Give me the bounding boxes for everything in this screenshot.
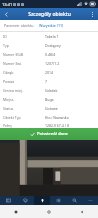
staticText: 7 [45,79,95,84]
button[interactable]: Map [0,196,17,205]
button[interactable]: Gmina miej. [0,86,98,95]
button[interactable]: Potwierdź dane [0,128,98,140]
staticText: Status [3,106,45,111]
button[interactable]: Search [66,196,82,205]
button[interactable]: Numer Ewi. [0,59,98,68]
button[interactable]: Home [32,205,65,218]
staticText: Pełny [3,123,45,128]
button[interactable]: Obręb [0,68,98,77]
staticText: Numer EGiB [3,52,45,57]
staticText: Powiat [3,79,45,84]
button[interactable]: Parametr obiektu [0,20,98,31]
button[interactable]: Typ [0,41,98,50]
staticText: 13:41 [2,2,13,7]
button[interactable]: Obiekt Typ [0,113,98,122]
staticText: Kto i Nazwisko [45,115,95,120]
button[interactable]: ID [0,32,98,41]
staticText: Dostępny [45,43,95,48]
staticText: 0.48/4 [45,52,95,57]
staticText: Parametr obiektu [4,23,34,28]
staticText: 1282.0 67.4 / 8 [45,123,95,128]
button[interactable]: List [50,196,66,205]
staticText: Obiekt Typ [3,115,45,120]
staticText: Typ [3,43,45,48]
button[interactable]: Recents [0,205,32,218]
staticText: Gmina miej. [3,88,45,93]
button[interactable]: Photo of object [0,140,98,196]
button[interactable]: Numer EGiB [0,50,98,59]
button[interactable]: Locate [34,196,50,205]
staticText: Szczegóły obiektu [28,11,71,18]
staticText: Gotowe [45,106,95,111]
staticText: 1207/1.2 [45,61,95,66]
button[interactable]: Status [0,104,98,113]
button[interactable]: Back [0,8,12,20]
staticText: Wszystkie (11) [39,23,64,28]
staticText: Obręb [3,70,45,75]
staticText: ID [3,34,45,39]
button[interactable]: Pełny [0,122,98,128]
staticText: Gdańsk [45,88,95,93]
button[interactable]: Layers [17,196,34,205]
staticText: 2014 [45,70,95,75]
button[interactable]: Back [65,205,98,218]
button[interactable]: More [82,196,98,205]
staticText: Numer Ewi. [3,61,45,66]
button[interactable]: Powiat [0,77,98,86]
staticText: Tabela 1 [45,34,95,39]
button[interactable]: Miejsc. [0,95,98,104]
staticText: Buga [45,97,95,102]
staticText: Potwierdź dane [37,131,69,137]
staticText: Miejsc. [3,97,45,102]
button[interactable]: More options [86,8,98,20]
